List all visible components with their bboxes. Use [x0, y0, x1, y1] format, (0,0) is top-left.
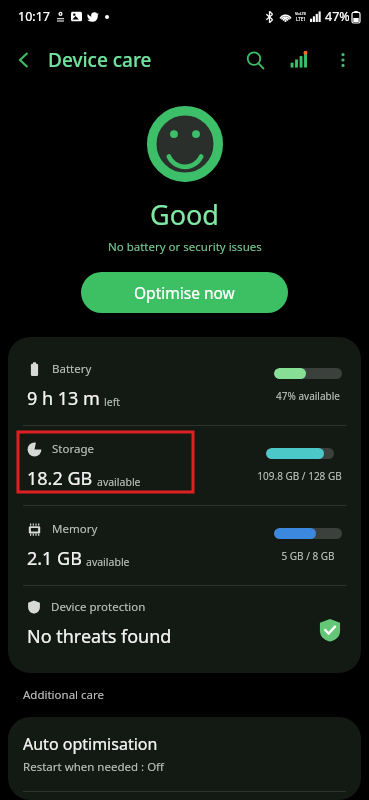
button[interactable]: More options [321, 38, 365, 82]
staticText: 9 h 13 m [27, 386, 100, 411]
button[interactable]: Battery [8, 346, 361, 425]
staticText: Optimise now [134, 282, 235, 303]
staticText: No battery or security issues [108, 239, 262, 255]
staticText: Additional care [23, 687, 105, 703]
staticText: 18.2 GB [27, 466, 93, 491]
staticText: 47% [325, 8, 350, 25]
button[interactable]: Auto optimisation [8, 717, 361, 800]
staticText: Memory [52, 521, 98, 537]
staticText: LTE1 [296, 16, 306, 22]
button[interactable]: Usage statistics [277, 38, 321, 82]
staticText: available [97, 475, 141, 489]
button[interactable]: Search [233, 38, 277, 82]
staticText: VoLTE [295, 11, 307, 16]
staticText: Battery [52, 361, 92, 377]
staticText: 5 GB / 8 GB [281, 549, 335, 563]
button[interactable]: Memory [8, 506, 361, 585]
staticText: Device care [48, 47, 152, 73]
staticText: 109.8 GB / 128 GB [257, 469, 342, 483]
button[interactable]: Optimise now [81, 272, 288, 313]
staticText: left [104, 395, 121, 409]
staticText: Storage [52, 441, 94, 457]
button[interactable]: Device protection [8, 586, 361, 661]
staticText: Device protection [51, 599, 146, 615]
staticText: Auto optimisation [23, 733, 158, 755]
button[interactable]: Storage [8, 426, 361, 505]
staticText: Restart when needed : Off [23, 759, 165, 775]
staticText: available [86, 555, 130, 569]
staticText: 47% available [276, 389, 340, 403]
staticText: 2.1 GB [27, 546, 82, 571]
staticText: 10:17 [18, 8, 50, 25]
button[interactable]: Back [0, 36, 48, 84]
staticText: No threats found [27, 624, 172, 649]
staticText: Good [150, 196, 219, 233]
